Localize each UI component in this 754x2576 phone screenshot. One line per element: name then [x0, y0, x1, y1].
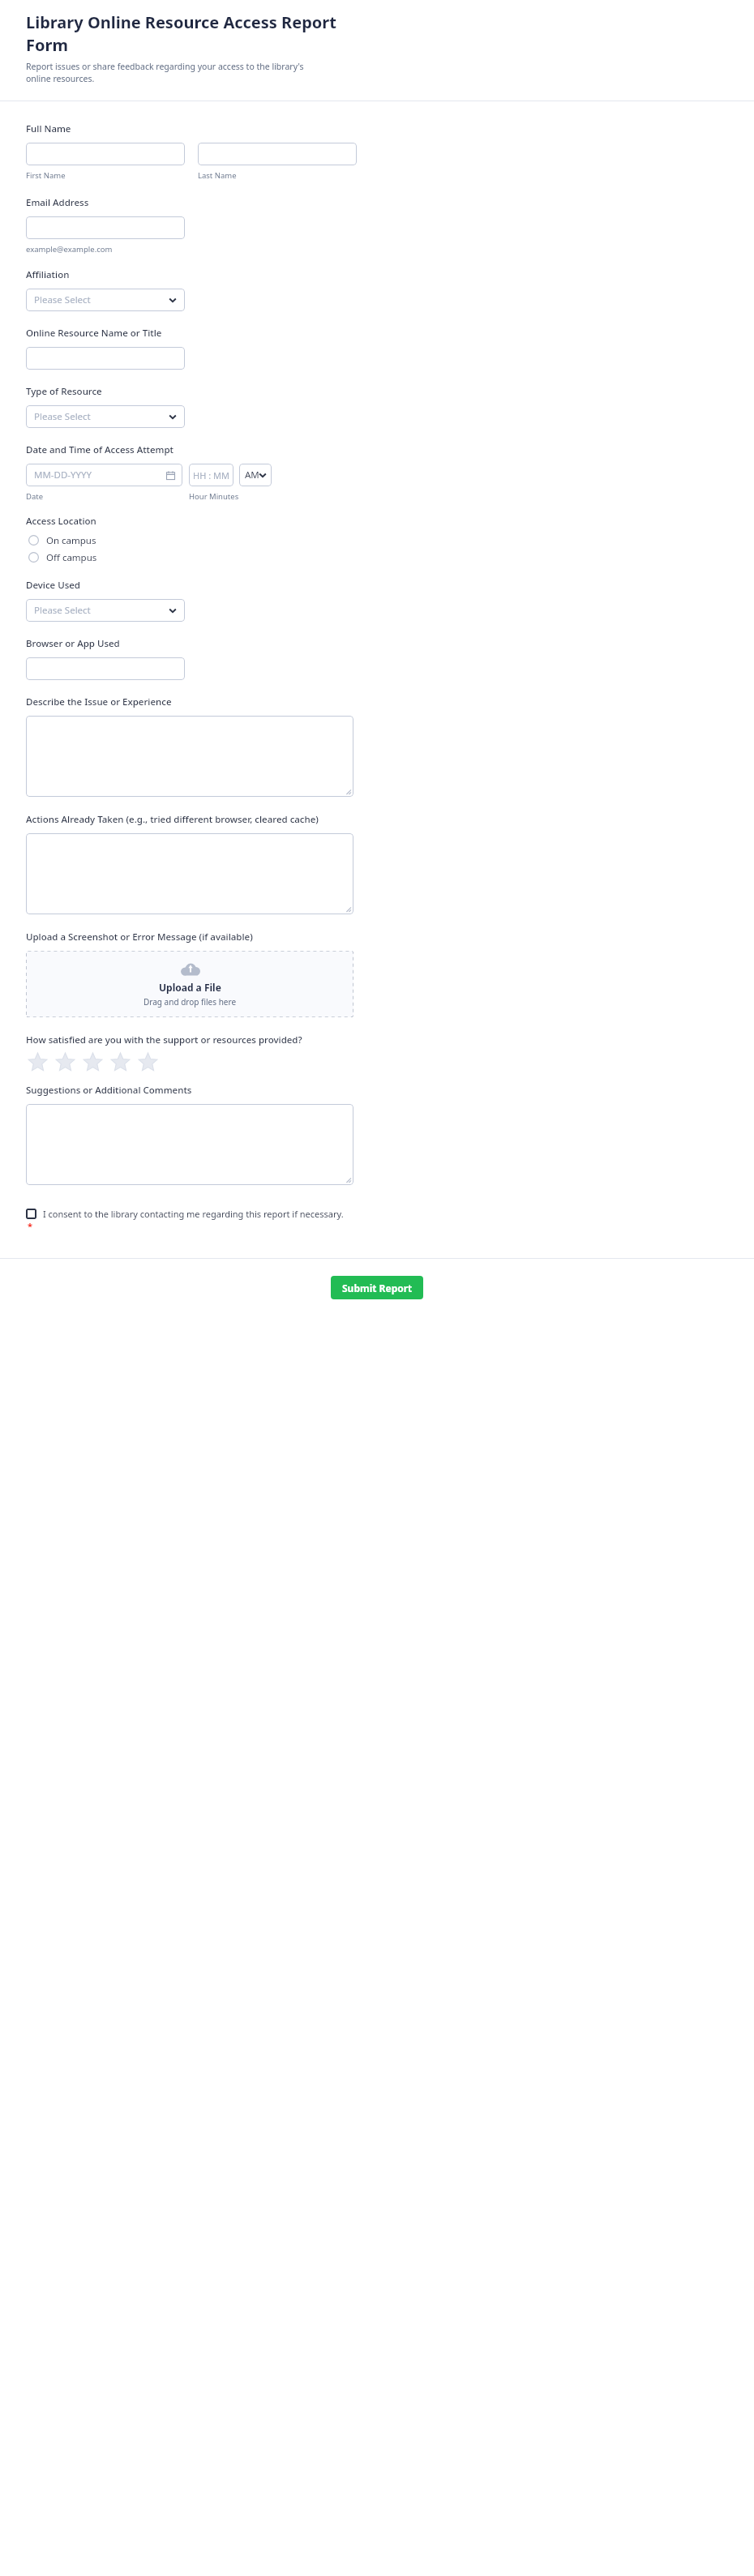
staticText: Browser or App Used — [26, 637, 120, 650]
button[interactable]: Rate — [138, 1052, 158, 1072]
button[interactable]: Rate — [28, 1052, 48, 1072]
staticText: I consent to the library contacting me r… — [43, 1208, 344, 1220]
staticText: Off campus — [46, 551, 97, 564]
staticText: On campus — [46, 534, 96, 547]
button[interactable]: Submit Report — [331, 1276, 423, 1299]
staticText: Library Online Resource Access Report Fo… — [26, 11, 338, 56]
staticText: Submit Report — [342, 1282, 413, 1294]
staticText: Drag and drop files here — [144, 996, 237, 1008]
button[interactable] — [26, 216, 185, 239]
button[interactable] — [26, 1104, 353, 1185]
button[interactable]: Upload a File — [26, 951, 353, 1017]
button[interactable]: MM-DD-YYYY — [26, 464, 182, 486]
staticText: Device Used — [26, 579, 80, 592]
button[interactable] — [26, 657, 185, 680]
staticText: example@example.com — [26, 244, 113, 255]
staticText: Please Select — [34, 293, 91, 306]
button[interactable]: Rate — [83, 1052, 103, 1072]
staticText: Upload a Screenshot or Error Message (if… — [26, 931, 253, 944]
staticText: Describe the Issue or Experience — [26, 695, 172, 708]
staticText: * — [28, 1220, 32, 1232]
staticText: MM-DD-YYYY — [34, 469, 92, 481]
button[interactable]: Rate — [110, 1052, 131, 1072]
button[interactable] — [26, 716, 353, 797]
staticText: Email Address — [26, 196, 89, 209]
staticText: How satisfied are you with the support o… — [26, 1033, 302, 1046]
button[interactable]: Please Select — [26, 289, 185, 311]
button[interactable]: AM — [239, 464, 272, 486]
staticText: Type of Resource — [26, 385, 102, 398]
button[interactable]: Off campus — [28, 550, 728, 565]
staticText: Full Name — [26, 122, 71, 135]
button[interactable] — [26, 833, 353, 914]
staticText: Suggestions or Additional Comments — [26, 1084, 192, 1097]
staticText: Please Select — [34, 410, 91, 423]
staticText: Please Select — [34, 604, 91, 617]
button[interactable] — [26, 143, 185, 165]
button[interactable]: HH : MM — [189, 464, 233, 486]
button[interactable]: Rate — [55, 1052, 75, 1072]
staticText: First Name — [26, 170, 66, 181]
staticText: Report issues or share feedback regardin… — [26, 61, 330, 84]
button[interactable] — [26, 347, 185, 370]
button[interactable]: Please Select — [26, 599, 185, 622]
staticText: HH : MM — [193, 469, 229, 481]
staticText: AM — [245, 469, 259, 481]
staticText: Affiliation — [26, 268, 70, 281]
staticText: Date — [26, 491, 44, 502]
staticText: Hour Minutes — [189, 491, 239, 502]
button[interactable]: On campus — [28, 533, 728, 548]
button[interactable]: I consent to the library contacting me r… — [26, 1208, 344, 1220]
staticText: Actions Already Taken (e.g., tried diffe… — [26, 813, 319, 826]
staticText: Last Name — [198, 170, 237, 181]
staticText: Date and Time of Access Attempt — [26, 443, 174, 456]
staticText: Online Resource Name or Title — [26, 327, 162, 340]
button[interactable] — [198, 143, 357, 165]
staticText: Upload a File — [159, 981, 221, 994]
button[interactable]: Please Select — [26, 405, 185, 428]
staticText: Access Location — [26, 515, 96, 528]
